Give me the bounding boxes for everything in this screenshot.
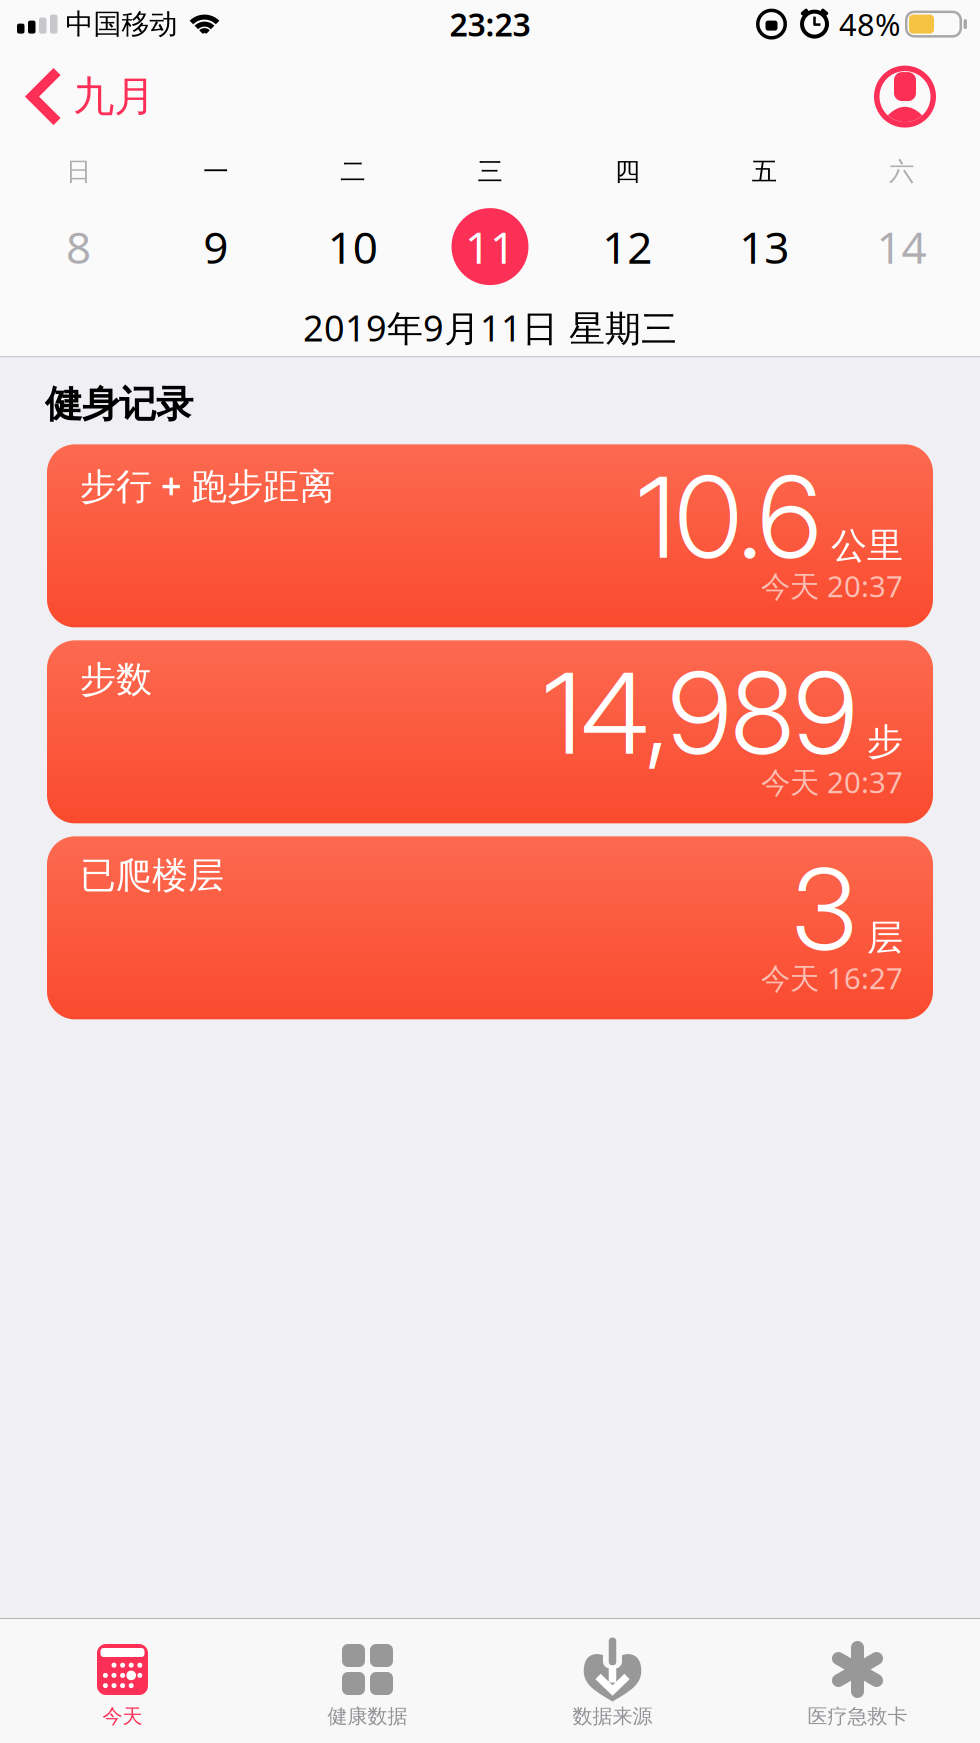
staticText: 中国移动 [65,7,177,41]
button[interactable]: 今天 [0,1641,245,1729]
button[interactable]: 步行 + 跑步距离 [47,444,933,627]
staticText: 层 [867,916,903,960]
button[interactable]: 已爬楼层 [47,836,933,1019]
button[interactable]: 医疗急救卡 [735,1641,980,1729]
staticText: 12 [602,217,652,276]
staticText: 今天 16:27 [761,958,903,997]
button[interactable]: 10 [284,199,421,295]
staticText: 今天 [102,1704,142,1729]
staticText: 3 [792,841,857,977]
staticText: 11 [465,217,515,276]
staticText: 一 [203,156,228,187]
button[interactable]: 13 [696,199,833,295]
staticText: 13 [739,217,789,276]
staticText: 五 [752,156,777,187]
staticText: 已爬楼层 [80,853,224,898]
staticText: 日 [66,156,91,187]
button[interactable]: 8 [10,199,147,295]
staticText: 三 [477,156,502,187]
staticText: 23:23 [449,3,530,45]
staticText: 今天 20:37 [761,566,903,605]
staticText: 10 [328,217,378,276]
staticText: 医疗急救卡 [807,1704,907,1729]
button[interactable]: 个人资料 [874,66,936,128]
button[interactable]: 12 [559,199,696,295]
staticText: 公里 [831,524,903,568]
button[interactable]: 14 [833,199,970,295]
staticText: 14 [876,217,926,276]
staticText: 48% [839,4,900,44]
staticText: 数据来源 [572,1704,652,1729]
staticText: 14,989 [543,645,857,781]
staticText: 四 [615,156,640,187]
button[interactable]: 数据来源 [490,1641,735,1729]
staticText: 健康数据 [327,1704,407,1729]
button[interactable]: 健康数据 [245,1641,490,1729]
button[interactable]: 9 [147,199,284,295]
button[interactable]: 返回九月 [0,71,155,122]
staticText: 六 [889,156,914,187]
staticText: 10.6 [637,449,821,585]
staticText: 今天 20:37 [761,762,903,801]
staticText: 九月 [73,71,155,122]
staticText: 8 [66,217,91,276]
staticText: 步数 [80,657,152,702]
staticText: 9 [203,217,228,276]
staticText: 健身记录 [45,381,193,427]
staticText: 2019年9月11日 星期三 [303,304,677,351]
staticText: 步行 + 跑步距离 [80,461,335,509]
button[interactable]: 11 [421,199,558,295]
button[interactable]: 步数 [47,640,933,823]
staticText: 二 [340,156,365,187]
staticText: 步 [867,720,903,764]
